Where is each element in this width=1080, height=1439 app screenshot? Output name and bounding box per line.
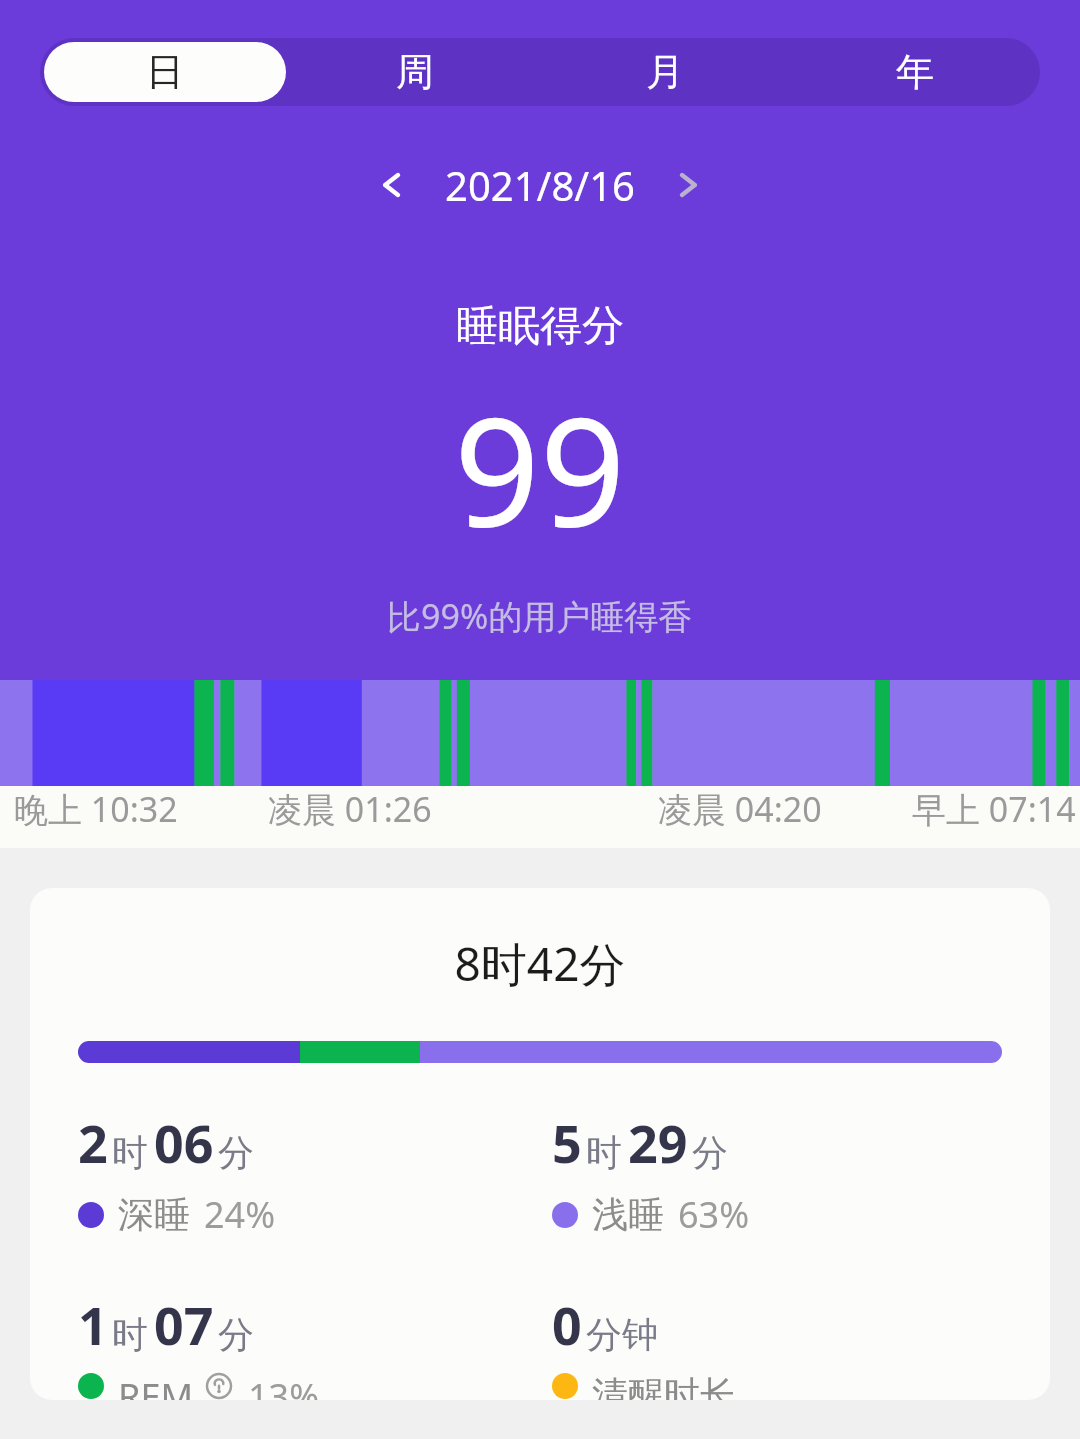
staticText: 06 <box>154 1107 214 1178</box>
button[interactable]: Previous day <box>357 152 423 218</box>
staticText: 时 <box>112 1312 148 1357</box>
staticText: 深睡 <box>118 1192 190 1237</box>
other: REM info <box>204 1372 234 1400</box>
staticText: 63% <box>678 1190 750 1239</box>
staticText: 分 <box>218 1312 254 1357</box>
button[interactable]: 8时42分 <box>30 888 1050 1400</box>
staticText: 清醒时长 <box>592 1372 736 1400</box>
button[interactable]: 周 <box>294 42 536 102</box>
staticText: 周 <box>396 48 434 96</box>
staticText: 5 <box>552 1107 582 1178</box>
staticText: 晚上 10:32 <box>14 786 178 832</box>
button[interactable]: 5 <box>552 1107 1026 1239</box>
staticText: 07 <box>154 1289 214 1360</box>
staticText: 24% <box>204 1190 276 1239</box>
staticText: REM <box>118 1372 194 1400</box>
staticText: 分 <box>218 1130 254 1175</box>
button[interactable]: 年 <box>794 42 1036 102</box>
staticText: 29 <box>628 1107 688 1178</box>
staticText: 浅睡 <box>592 1192 664 1237</box>
staticText: 凌晨 01:26 <box>268 786 432 832</box>
staticText: 日 <box>146 48 184 96</box>
staticText: 早上 07:14 <box>912 786 1076 832</box>
staticText: 时 <box>586 1130 622 1175</box>
button[interactable]: Next day <box>657 152 723 218</box>
staticText: 1 <box>78 1289 108 1360</box>
staticText: 分钟 <box>586 1312 658 1357</box>
staticText: 8时42分 <box>30 932 1050 995</box>
staticText: 99 <box>454 367 626 571</box>
staticText: 2 <box>78 1107 108 1178</box>
staticText: 0 <box>552 1289 582 1360</box>
button[interactable]: 0 <box>552 1289 1026 1400</box>
staticText: 凌晨 04:20 <box>658 786 822 832</box>
staticText: 2021/8/16 <box>445 158 635 212</box>
staticText: 年 <box>896 48 934 96</box>
button[interactable]: 月 <box>544 42 786 102</box>
button[interactable]: 日 <box>44 42 286 102</box>
button[interactable]: 2 <box>78 1107 552 1239</box>
staticText: 分 <box>692 1130 728 1175</box>
staticText: 睡眠得分 <box>456 300 624 353</box>
staticText: 月 <box>646 48 684 96</box>
staticText: 13% <box>248 1372 320 1400</box>
button[interactable]: 1 <box>78 1289 552 1400</box>
staticText: 时 <box>112 1130 148 1175</box>
staticText: 比99%的用户睡得香 <box>387 593 693 639</box>
